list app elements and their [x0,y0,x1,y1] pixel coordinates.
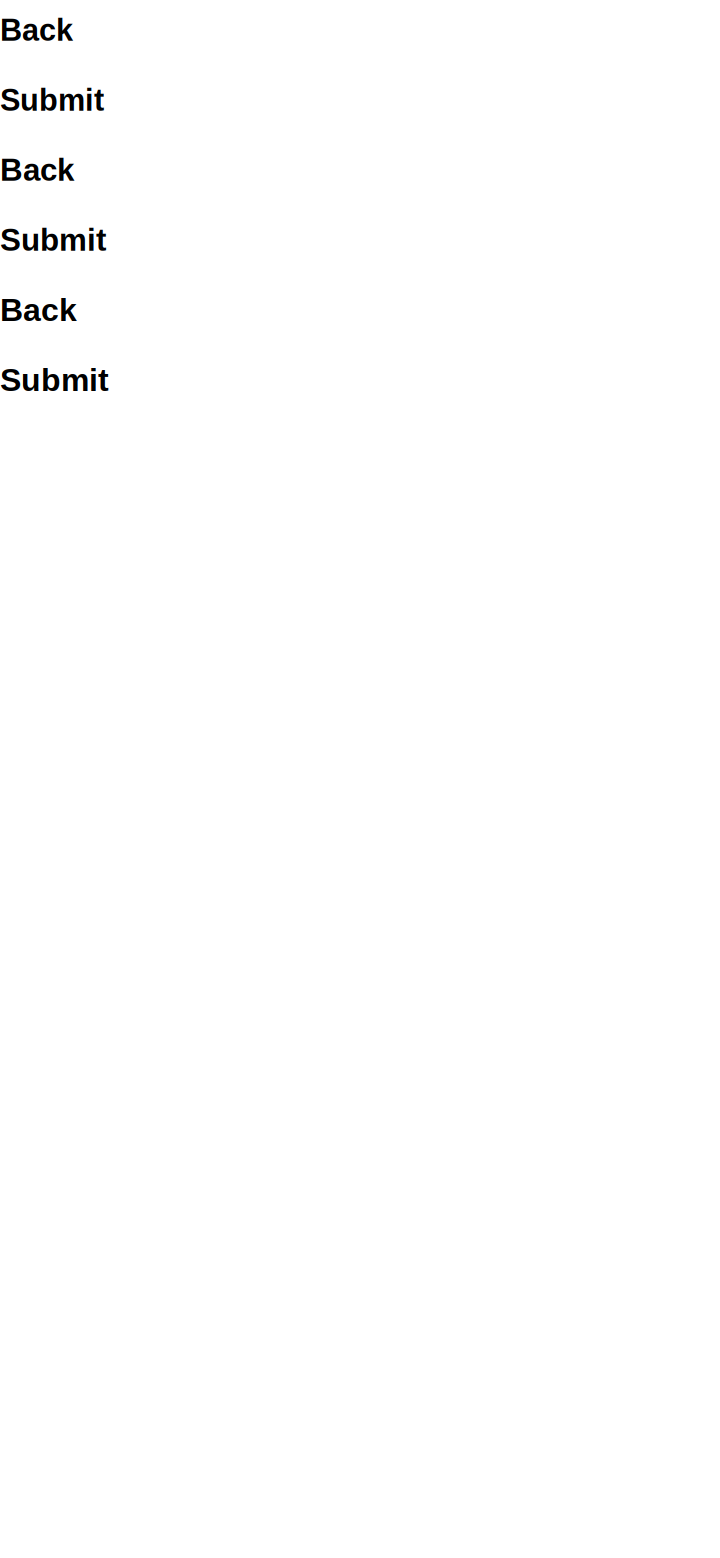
staticText: Back [0,292,77,328]
staticText: Back [0,13,73,47]
staticText: Submit [0,362,109,398]
staticText: Submit [0,222,106,257]
staticText: Submit [0,83,104,117]
staticText: Back [0,152,74,187]
